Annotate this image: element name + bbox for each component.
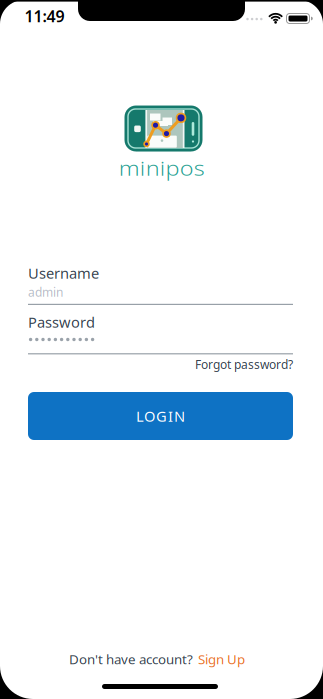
button[interactable]: LOGIN [28, 392, 293, 440]
button[interactable]: Sign Up [198, 650, 245, 668]
staticText: Password [28, 312, 95, 332]
staticText: admin [28, 284, 63, 300]
staticText: minipos [125, 155, 198, 181]
staticText: Forgot password? [195, 356, 293, 372]
staticText: LOGIN [136, 406, 185, 426]
button[interactable]: Forgot password? [28, 356, 293, 372]
staticText: Don't have account? [69, 650, 193, 668]
staticText: Sign Up [198, 650, 245, 668]
staticText: 11:49 [24, 5, 64, 27]
staticText: Username [28, 263, 99, 283]
